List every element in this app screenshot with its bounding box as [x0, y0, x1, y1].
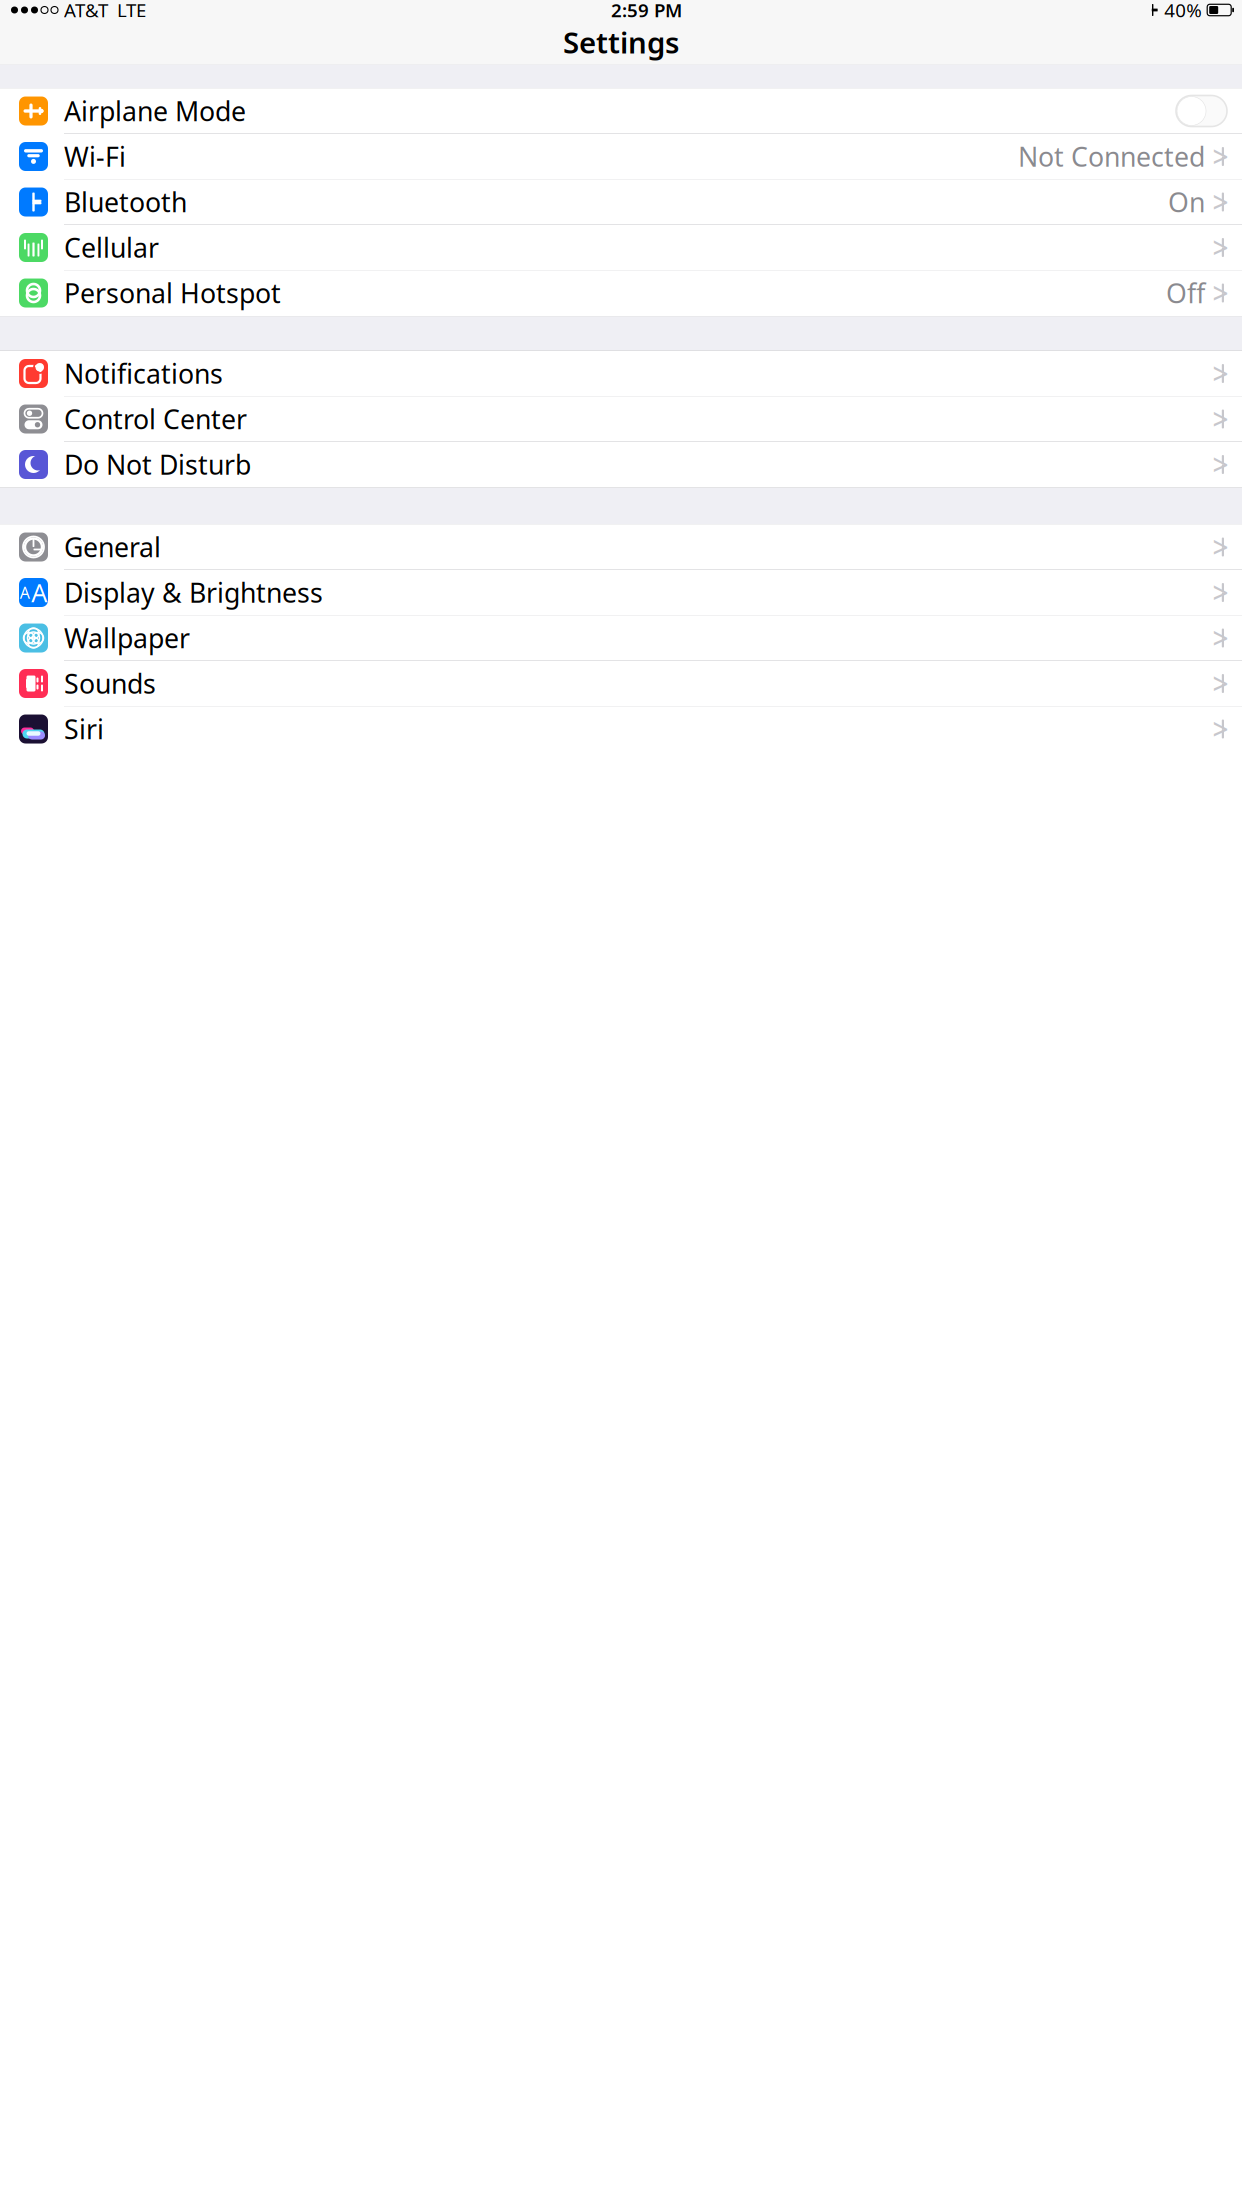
staticText: LTE	[117, 0, 146, 22]
button[interactable]: Airplane Mode	[0, 88, 1242, 134]
staticText: A	[31, 576, 47, 609]
staticText: Not Connected	[1018, 139, 1205, 174]
button[interactable]: Siri	[0, 706, 1242, 751]
staticText: >	[1212, 665, 1228, 702]
staticText: 40%	[1164, 0, 1202, 22]
staticText: AT&T	[64, 0, 108, 22]
staticText: >	[1212, 528, 1228, 566]
button[interactable]: Control Center	[0, 396, 1242, 442]
button[interactable]: Cellular	[0, 225, 1242, 270]
staticText: >	[1212, 574, 1228, 611]
staticText: Bluetooth	[64, 184, 187, 220]
staticText: A	[20, 582, 30, 603]
button[interactable]: Wi-Fi	[0, 134, 1242, 179]
staticText: Display & Brightness	[64, 575, 323, 610]
staticText: Personal Hotspot	[64, 275, 281, 311]
staticText: Cellular	[64, 230, 159, 265]
staticText: Do Not Disturb	[64, 447, 251, 482]
staticText: >	[1212, 229, 1228, 266]
staticText: Settings	[563, 22, 679, 61]
staticText: >	[1212, 446, 1228, 483]
staticText: Control Center	[64, 401, 247, 437]
staticText: Wi-Fi	[64, 139, 126, 174]
staticText: General	[64, 529, 161, 565]
staticText: >	[1212, 274, 1228, 312]
staticText: >	[1212, 355, 1228, 392]
staticText: >	[1212, 619, 1228, 657]
staticText: >	[1212, 400, 1228, 438]
staticText: >	[1212, 138, 1228, 175]
staticText: >	[1212, 183, 1228, 221]
staticText: Off	[1166, 275, 1205, 311]
button[interactable]: ⬡	[0, 179, 1242, 225]
staticText: Airplane Mode	[64, 93, 246, 129]
staticText: Notifications	[64, 356, 223, 391]
button[interactable]: Sounds	[0, 661, 1242, 706]
button[interactable]: A	[0, 570, 1242, 615]
staticText: >	[1212, 710, 1228, 748]
button[interactable]: Notifications	[0, 351, 1242, 396]
button[interactable]: General	[0, 524, 1242, 570]
staticText: Siri	[64, 711, 104, 747]
staticText: Sounds	[64, 666, 156, 701]
staticText: On	[1168, 184, 1205, 220]
button[interactable]: Do Not Disturb	[0, 442, 1242, 487]
button[interactable]: Wallpaper	[0, 615, 1242, 661]
staticText: Wallpaper	[64, 620, 190, 656]
staticText: 2:59 PM	[611, 0, 682, 22]
button[interactable]: Personal Hotspot	[0, 270, 1242, 316]
